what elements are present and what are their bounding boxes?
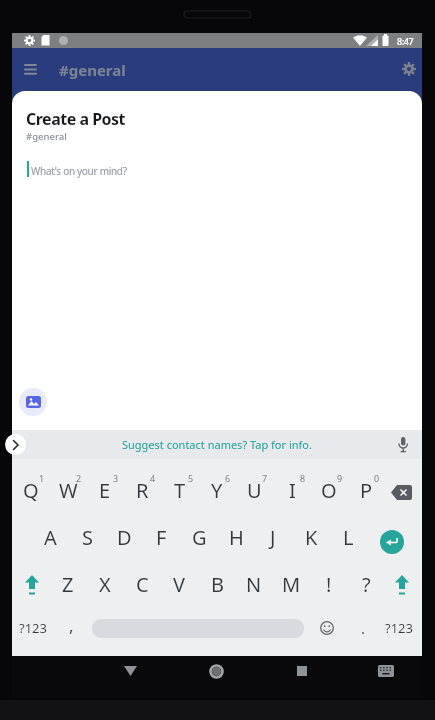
staticText: Q xyxy=(23,477,39,504)
staticText: P xyxy=(360,477,373,504)
staticText: H xyxy=(229,524,244,551)
button[interactable]: A xyxy=(28,523,72,551)
button[interactable] xyxy=(392,433,414,456)
button[interactable] xyxy=(390,573,414,597)
button[interactable]: C xyxy=(120,570,164,598)
staticText: 0 xyxy=(374,472,380,484)
staticText: . xyxy=(361,618,366,638)
button[interactable]: B xyxy=(195,570,239,598)
button[interactable]: S xyxy=(65,523,109,551)
button[interactable]: . xyxy=(341,614,385,642)
staticText: S xyxy=(82,524,93,551)
button[interactable]: ? xyxy=(344,570,388,598)
staticText: W xyxy=(59,477,78,504)
staticText: , xyxy=(69,614,74,637)
staticText: T xyxy=(174,477,186,504)
staticText: 9 xyxy=(337,472,343,484)
staticText: Z xyxy=(62,571,74,598)
staticText: #general xyxy=(59,60,126,80)
staticText: ? xyxy=(362,571,371,598)
staticText: E xyxy=(99,477,111,504)
button[interactable]: W xyxy=(46,476,90,504)
staticText: Suggest contact names? Tap for info. xyxy=(122,437,312,452)
staticText: 6 xyxy=(225,472,231,484)
button[interactable]: H xyxy=(214,523,258,551)
button[interactable]: Q xyxy=(9,476,53,504)
button[interactable]: K xyxy=(289,523,333,551)
button[interactable]: U xyxy=(232,476,276,504)
staticText: N xyxy=(246,571,262,598)
staticText: I xyxy=(289,477,296,504)
button[interactable]: M xyxy=(269,570,313,598)
staticText: V xyxy=(173,571,185,598)
staticText: C xyxy=(136,571,149,598)
staticText: 5 xyxy=(188,472,194,484)
button[interactable]: F xyxy=(139,523,183,551)
staticText: #general xyxy=(26,130,67,143)
button[interactable]: P xyxy=(344,476,388,504)
button[interactable]: ?123 xyxy=(11,614,55,642)
button[interactable]: What's on your mind? xyxy=(31,164,127,178)
button[interactable]: X xyxy=(83,570,127,598)
button[interactable] xyxy=(19,388,47,416)
button[interactable] xyxy=(389,483,414,502)
staticText: L xyxy=(343,524,354,551)
staticText: ! xyxy=(326,571,332,598)
staticText: X xyxy=(99,571,111,598)
staticText: B xyxy=(211,571,224,598)
button[interactable] xyxy=(316,617,337,638)
button[interactable]: T xyxy=(158,476,202,504)
button[interactable] xyxy=(290,659,314,683)
staticText: G xyxy=(192,524,207,551)
staticText: D xyxy=(117,524,132,551)
button[interactable]: ! xyxy=(307,570,351,598)
staticText: Create a Post xyxy=(26,108,126,130)
button[interactable]: J xyxy=(251,523,295,551)
button[interactable] xyxy=(204,659,228,683)
button[interactable]: D xyxy=(102,523,146,551)
button[interactable]: G xyxy=(177,523,221,551)
button[interactable]: R xyxy=(120,476,164,504)
button[interactable]: Y xyxy=(195,476,239,504)
staticText: 1 xyxy=(39,472,45,484)
button[interactable] xyxy=(397,57,420,80)
button[interactable]: E xyxy=(83,476,127,504)
staticText: 4 xyxy=(150,472,156,484)
button[interactable]: N xyxy=(232,570,276,598)
button[interactable] xyxy=(18,58,42,80)
staticText: R xyxy=(136,477,149,504)
button[interactable] xyxy=(20,573,44,597)
button[interactable] xyxy=(380,530,404,554)
button[interactable]: I xyxy=(270,476,314,504)
button[interactable]: ?123 xyxy=(377,614,421,642)
button[interactable]: Z xyxy=(46,570,90,598)
staticText: F xyxy=(156,524,167,551)
staticText: ?123 xyxy=(385,619,413,637)
staticText: 8:47 xyxy=(397,35,414,47)
staticText: 3 xyxy=(113,472,119,484)
staticText: K xyxy=(305,524,318,551)
button[interactable]: O xyxy=(307,476,351,504)
button[interactable] xyxy=(5,434,26,455)
button[interactable]: V xyxy=(157,570,201,598)
staticText: O xyxy=(321,477,337,504)
staticText: J xyxy=(270,524,276,551)
button[interactable] xyxy=(374,659,398,683)
staticText: 2 xyxy=(76,472,82,484)
staticText: A xyxy=(44,524,57,551)
button[interactable]: L xyxy=(326,523,370,551)
button[interactable] xyxy=(118,659,142,683)
staticText: U xyxy=(247,477,262,504)
staticText: 7 xyxy=(262,472,268,484)
staticText: M xyxy=(282,571,301,598)
staticText: Y xyxy=(211,477,223,504)
staticText: 8 xyxy=(300,472,306,484)
button[interactable]: , xyxy=(49,611,93,639)
staticText: ?123 xyxy=(19,619,47,637)
